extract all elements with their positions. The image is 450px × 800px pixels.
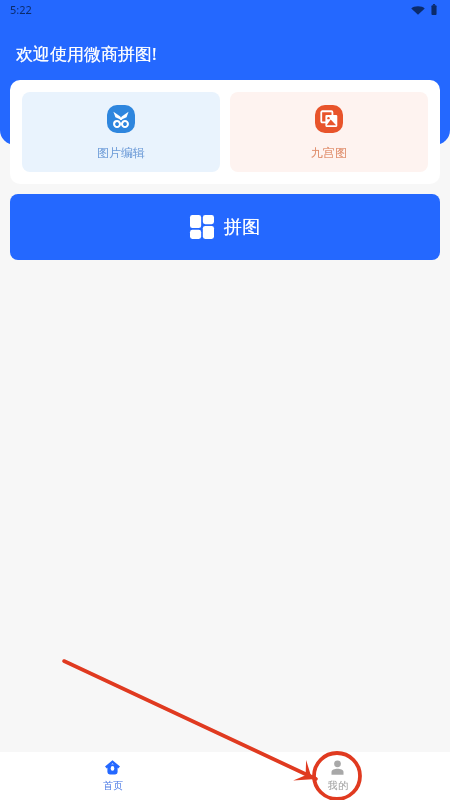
staticText: 欢迎使用微商拼图! [16, 42, 157, 65]
button[interactable]: 九宫图 [230, 92, 428, 172]
staticText: 5:22 [10, 2, 32, 17]
staticText: 首页 [103, 779, 123, 792]
staticText: 我的 [328, 779, 348, 792]
staticText: 拼图 [224, 216, 260, 239]
button[interactable]: 图片编辑 [22, 92, 220, 172]
button[interactable]: 拼图 [10, 194, 440, 260]
button[interactable]: 首页 [0, 752, 225, 800]
staticText: 图片编辑 [97, 145, 145, 160]
staticText: 九宫图 [311, 145, 347, 160]
button[interactable]: 我的 [225, 752, 450, 800]
